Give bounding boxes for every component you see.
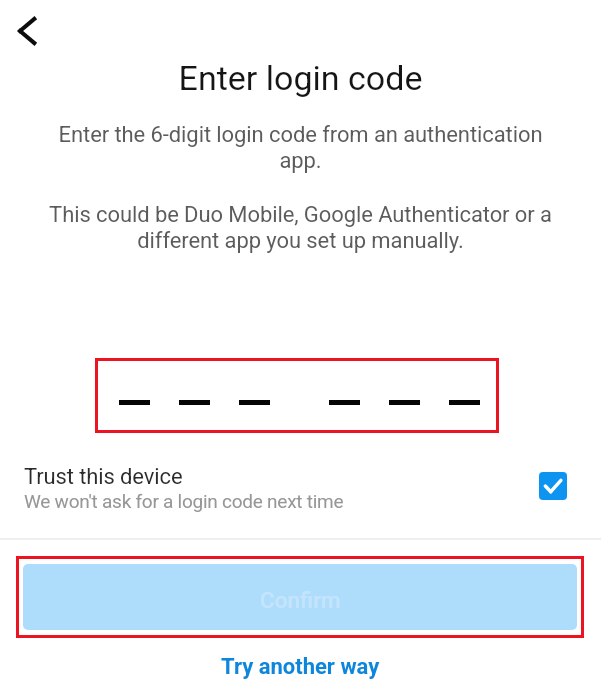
staticText: Enter login code	[0, 58, 601, 98]
button[interactable]: Try another way	[205, 650, 396, 684]
button[interactable]: Trust this device	[0, 455, 601, 517]
button[interactable]: 6-digit login code	[95, 358, 499, 433]
button[interactable]: Back	[2, 7, 50, 55]
staticText: Trust this device	[24, 464, 183, 490]
staticText: Enter the 6-digit login code from an aut…	[48, 122, 553, 173]
staticText: Confirm	[260, 587, 341, 613]
button[interactable]: Confirm	[23, 564, 577, 630]
staticText: This could be Duo Mobile, Google Authent…	[40, 202, 561, 253]
staticText: We won't ask for a login code next time	[24, 490, 344, 512]
